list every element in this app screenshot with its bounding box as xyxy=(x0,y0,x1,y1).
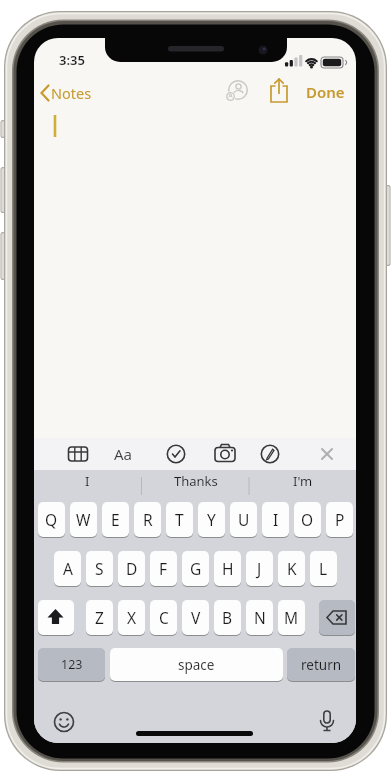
staticText: J xyxy=(257,558,262,579)
staticText: P xyxy=(335,509,345,530)
staticText: space xyxy=(178,656,215,674)
button[interactable] xyxy=(52,710,76,734)
button[interactable]: Z xyxy=(86,600,113,635)
button[interactable]: M xyxy=(278,600,305,635)
button[interactable] xyxy=(319,600,355,635)
button[interactable] xyxy=(211,440,239,468)
button[interactable]: space xyxy=(110,648,283,681)
button[interactable] xyxy=(64,440,92,468)
staticText: I xyxy=(273,509,279,530)
staticText: 3:35 xyxy=(59,51,85,69)
button[interactable]: P xyxy=(326,502,353,537)
button[interactable]: I xyxy=(262,502,289,537)
button[interactable]: X xyxy=(118,600,145,635)
staticText: T xyxy=(175,509,184,530)
button[interactable]: L xyxy=(310,551,337,586)
button[interactable] xyxy=(256,440,284,468)
button[interactable]: S xyxy=(86,551,113,586)
staticText: D xyxy=(126,558,138,579)
button[interactable]: Notes xyxy=(38,82,94,104)
staticText: Notes xyxy=(51,83,92,103)
button[interactable]: 123 xyxy=(38,648,105,681)
staticText: V xyxy=(191,607,201,628)
button[interactable]: J xyxy=(246,551,273,586)
staticText: A xyxy=(63,558,73,579)
staticText: Done xyxy=(306,82,345,102)
staticText: L xyxy=(319,558,328,579)
button[interactable] xyxy=(313,440,341,468)
button[interactable]: D xyxy=(118,551,145,586)
button[interactable]: H xyxy=(214,551,241,586)
staticText: Z xyxy=(95,607,104,628)
button[interactable] xyxy=(162,440,190,468)
staticText: X xyxy=(127,607,137,628)
staticText: Aa xyxy=(114,444,133,464)
button[interactable]: C xyxy=(150,600,177,635)
staticText: Thanks xyxy=(174,472,218,490)
button[interactable]: B xyxy=(214,600,241,635)
button[interactable]: W xyxy=(70,502,97,537)
button[interactable]: F xyxy=(150,551,177,586)
button[interactable] xyxy=(224,78,252,104)
staticText: K xyxy=(287,558,297,579)
button[interactable]: U xyxy=(230,502,257,537)
button[interactable]: Aa xyxy=(108,440,138,468)
button[interactable] xyxy=(267,76,291,104)
staticText: H xyxy=(222,558,234,579)
button[interactable]: Y xyxy=(198,502,225,537)
staticText: S xyxy=(95,558,104,579)
button[interactable] xyxy=(38,600,74,635)
button[interactable]: A xyxy=(54,551,81,586)
button[interactable]: O xyxy=(294,502,321,537)
staticText: B xyxy=(222,607,233,628)
button[interactable]: I'm xyxy=(249,470,356,491)
button[interactable]: R xyxy=(134,502,161,537)
button[interactable]: Done xyxy=(302,81,347,105)
staticText: 123 xyxy=(61,656,83,673)
staticText: G xyxy=(190,558,202,579)
staticText: W xyxy=(76,509,91,530)
staticText: F xyxy=(159,558,168,579)
staticText: M xyxy=(284,607,299,628)
button[interactable]: E xyxy=(102,502,129,537)
button[interactable]: N xyxy=(246,600,273,635)
button[interactable]: I xyxy=(34,470,141,491)
button[interactable]: T xyxy=(166,502,193,537)
button[interactable]: Thanks xyxy=(142,470,249,491)
button[interactable]: G xyxy=(182,551,209,586)
staticText: Q xyxy=(45,509,58,530)
staticText: I xyxy=(85,472,90,490)
button[interactable]: V xyxy=(182,600,209,635)
button[interactable]: K xyxy=(278,551,305,586)
staticText: O xyxy=(301,509,314,530)
staticText: return xyxy=(301,656,342,674)
staticText: R xyxy=(143,509,153,530)
staticText: E xyxy=(111,509,120,530)
button[interactable]: return xyxy=(287,648,355,681)
button[interactable]: Q xyxy=(38,502,65,537)
staticText: Y xyxy=(207,509,216,530)
staticText: U xyxy=(238,509,250,530)
staticText: I'm xyxy=(293,472,313,490)
staticText: C xyxy=(159,607,169,628)
button[interactable] xyxy=(315,710,339,734)
staticText: N xyxy=(254,607,266,628)
